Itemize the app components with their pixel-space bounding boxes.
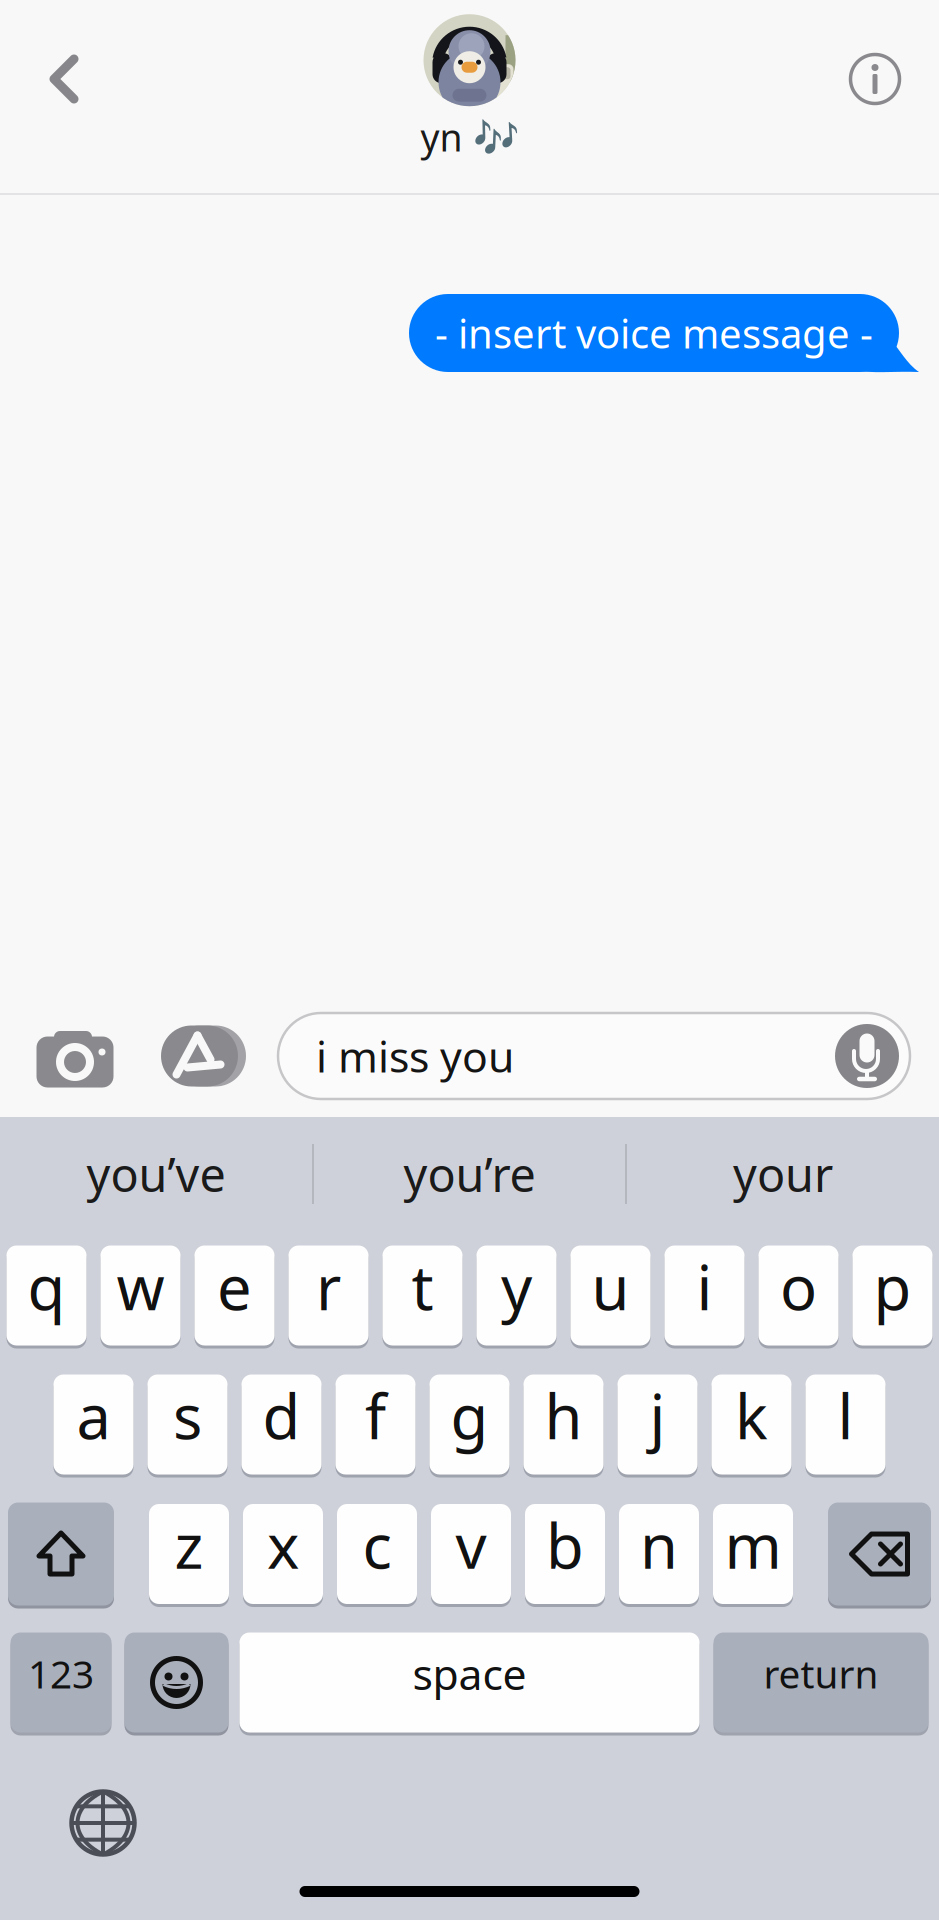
staticText: space — [412, 1645, 526, 1702]
button[interactable]: Camera — [32, 1003, 118, 1109]
staticText: g — [450, 1375, 488, 1456]
button[interactable]: p — [852, 1244, 932, 1347]
staticText: you’ve — [86, 1143, 225, 1205]
staticText: h — [544, 1375, 582, 1456]
staticText: u — [591, 1246, 629, 1327]
staticText: c — [362, 1504, 391, 1586]
button[interactable]: j — [617, 1373, 697, 1476]
staticText: z — [174, 1504, 203, 1586]
staticText: e — [217, 1246, 252, 1327]
button[interactable]: r — [288, 1244, 368, 1347]
button[interactable]: o — [758, 1244, 838, 1347]
button[interactable]: space — [239, 1631, 699, 1734]
button[interactable]: k — [711, 1373, 791, 1476]
staticText: i — [696, 1246, 712, 1327]
staticText: you’re — [403, 1143, 535, 1205]
staticText: 123 — [28, 1648, 94, 1699]
button[interactable]: f — [335, 1373, 415, 1476]
button[interactable]: e — [194, 1244, 274, 1347]
button[interactable]: Emoji — [124, 1631, 228, 1734]
staticText: p — [873, 1246, 911, 1327]
staticText: m — [724, 1504, 781, 1586]
button[interactable]: s — [147, 1373, 227, 1476]
button[interactable]: n — [619, 1502, 699, 1605]
button[interactable]: w — [100, 1244, 180, 1347]
button[interactable]: 123 — [10, 1631, 111, 1734]
staticText: l — [837, 1375, 853, 1456]
button[interactable]: l — [805, 1373, 885, 1476]
button[interactable]: Next keyboard — [57, 1777, 149, 1869]
staticText: b — [546, 1504, 584, 1586]
staticText: t — [411, 1246, 433, 1327]
button[interactable]: t — [382, 1244, 462, 1347]
button[interactable]: Shift — [8, 1501, 114, 1607]
button[interactable]: y — [476, 1244, 556, 1347]
staticText: o — [780, 1246, 817, 1327]
staticText: s — [173, 1375, 202, 1456]
staticText: i miss you — [316, 1028, 514, 1084]
button[interactable]: h — [523, 1373, 603, 1476]
staticText: a — [76, 1375, 110, 1456]
button[interactable]: c — [337, 1502, 417, 1605]
staticText: - insert voice message - — [435, 306, 873, 359]
staticText: w — [116, 1246, 164, 1327]
staticText: your — [733, 1143, 833, 1205]
button[interactable]: Details — [829, 24, 921, 134]
button[interactable]: g — [429, 1373, 509, 1476]
staticText: v — [455, 1504, 486, 1586]
staticText: q — [27, 1246, 65, 1327]
staticText: n — [640, 1504, 678, 1586]
staticText: x — [267, 1504, 299, 1586]
staticText: return — [763, 1648, 878, 1699]
staticText: j — [649, 1375, 665, 1456]
button[interactable]: i miss you — [278, 1013, 910, 1099]
button[interactable]: return — [713, 1631, 928, 1734]
staticText: f — [365, 1375, 386, 1456]
button[interactable]: u — [570, 1244, 650, 1347]
button[interactable]: you’ve — [0, 1117, 312, 1231]
button[interactable]: q — [6, 1244, 86, 1347]
button[interactable]: v — [431, 1502, 511, 1605]
button[interactable]: you’re — [314, 1117, 625, 1231]
button[interactable]: m — [713, 1502, 793, 1605]
staticText: yn 🎶 — [420, 112, 518, 162]
button[interactable]: a — [53, 1373, 133, 1476]
staticText: k — [735, 1375, 768, 1456]
button[interactable]: Back — [18, 24, 110, 134]
button[interactable]: Apps — [157, 1003, 242, 1109]
button[interactable]: Delete — [828, 1501, 931, 1607]
staticText: r — [316, 1246, 341, 1327]
button[interactable]: d — [241, 1373, 321, 1476]
button[interactable]: b — [525, 1502, 605, 1605]
button[interactable]: i — [664, 1244, 744, 1347]
button[interactable]: x — [243, 1502, 323, 1605]
staticText: d — [262, 1375, 300, 1456]
staticText: y — [501, 1246, 532, 1327]
button[interactable]: your — [627, 1117, 939, 1231]
button[interactable]: z — [149, 1502, 229, 1605]
